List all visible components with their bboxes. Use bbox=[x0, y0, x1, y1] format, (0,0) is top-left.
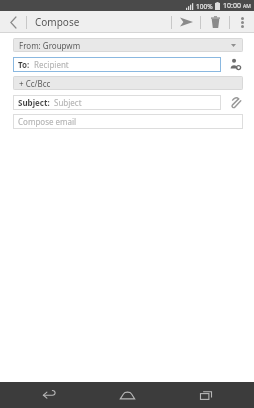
button[interactable]: To: bbox=[13, 57, 221, 72]
staticText: AM bbox=[243, 3, 251, 10]
button[interactable]: Delete bbox=[201, 11, 229, 33]
staticText: Compose bbox=[35, 15, 80, 29]
button[interactable]: Compose email bbox=[13, 114, 243, 129]
button[interactable]: + Cc/Bcc bbox=[13, 76, 243, 90]
button[interactable]: Back bbox=[0, 11, 26, 33]
staticText: Compose email bbox=[18, 116, 77, 127]
button[interactable]: Add recipient from contacts bbox=[227, 56, 243, 72]
button[interactable]: Home bbox=[97, 382, 157, 408]
staticText: Subject: bbox=[18, 97, 50, 108]
staticText: To: bbox=[18, 59, 30, 70]
staticText: From: Groupwm bbox=[19, 40, 81, 51]
button[interactable]: From: Groupwm bbox=[13, 38, 243, 52]
button[interactable]: Attach file bbox=[227, 94, 243, 110]
button[interactable]: Subject: bbox=[13, 95, 221, 110]
staticText: 10:00 bbox=[223, 1, 241, 11]
staticText: Recipient bbox=[34, 59, 69, 70]
button[interactable]: Send bbox=[172, 11, 200, 33]
staticText: + Cc/Bcc bbox=[19, 78, 51, 89]
button[interactable]: Back bbox=[19, 382, 79, 408]
button[interactable]: Recent apps bbox=[176, 382, 236, 408]
staticText: Subject bbox=[54, 97, 82, 108]
button[interactable]: More options bbox=[230, 11, 254, 33]
staticText: 100% bbox=[196, 2, 213, 11]
